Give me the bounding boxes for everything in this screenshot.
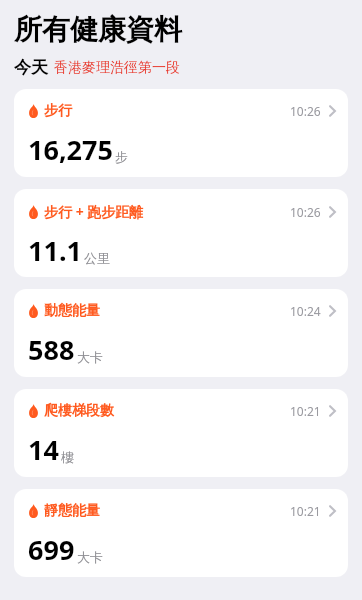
staticText: 大卡 — [77, 349, 103, 365]
button[interactable]: 動態能量 — [14, 289, 348, 377]
staticText: 14 — [28, 431, 59, 468]
staticText: 10:24 — [290, 303, 321, 319]
staticText: 樓 — [61, 449, 74, 465]
other: Open details — [329, 505, 336, 517]
other: Open details — [329, 206, 336, 218]
staticText: 動態能量 — [44, 302, 100, 320]
staticText: 步行 — [44, 102, 72, 120]
staticText: 香港麥理浩徑第一段 — [54, 59, 180, 77]
staticText: 步 — [115, 149, 128, 165]
other: Open details — [329, 405, 336, 417]
staticText: 大卡 — [77, 549, 103, 565]
button[interactable]: 靜態能量 — [14, 489, 348, 577]
staticText: 10:21 — [290, 503, 321, 519]
staticText: 爬樓梯段數 — [44, 402, 114, 420]
button[interactable]: 步行 + 跑步距離 — [14, 189, 348, 277]
other: Open details — [329, 105, 336, 117]
staticText: 公里 — [84, 250, 110, 266]
staticText: 10:26 — [290, 204, 321, 220]
staticText: 10:26 — [290, 103, 321, 119]
staticText: 10:21 — [290, 403, 321, 419]
button[interactable]: 步行 — [14, 89, 348, 177]
staticText: 靜態能量 — [44, 502, 100, 520]
staticText: 588 — [28, 331, 75, 368]
other: Open details — [329, 305, 336, 317]
button[interactable]: 爬樓梯段數 — [14, 389, 348, 477]
staticText: 16,275 — [28, 131, 113, 168]
staticText: 今天 — [14, 57, 48, 78]
staticText: 步行 + 跑步距離 — [44, 202, 144, 221]
staticText: 11.1 — [28, 232, 82, 269]
staticText: 699 — [28, 531, 75, 568]
staticText: 所有健康資料 — [14, 12, 182, 47]
